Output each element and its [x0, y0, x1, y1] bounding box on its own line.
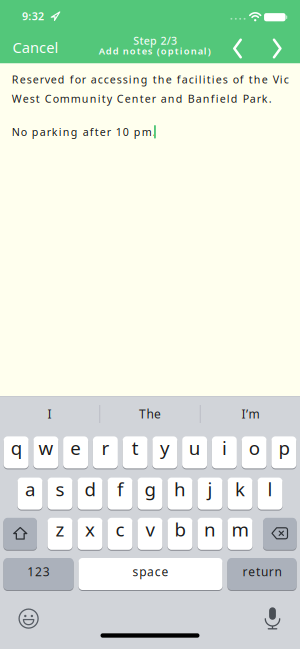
staticText: o	[249, 435, 260, 460]
button[interactable]: Dictation	[259, 602, 285, 635]
button[interactable]: o	[242, 436, 267, 468]
button[interactable]: Next step	[268, 34, 286, 63]
button[interactable]: The	[100, 396, 200, 436]
staticText: w	[38, 435, 53, 460]
button[interactable]: v	[137, 518, 162, 550]
button[interactable]: a	[17, 478, 42, 510]
button[interactable]: u	[182, 436, 207, 468]
button[interactable]: c	[107, 518, 132, 550]
staticText: p	[278, 435, 289, 460]
button[interactable]: g	[137, 478, 162, 510]
staticText: n	[204, 517, 216, 542]
staticText: 123	[27, 564, 50, 580]
button[interactable]: space	[78, 558, 222, 590]
staticText: return	[242, 564, 281, 580]
button[interactable]: r	[93, 436, 118, 468]
button[interactable]: m	[227, 518, 252, 550]
button[interactable]: Shift	[3, 518, 37, 550]
staticText: q	[11, 435, 22, 460]
button[interactable]: z	[47, 518, 72, 550]
button[interactable]: e	[63, 436, 88, 468]
button[interactable]: k	[227, 478, 252, 510]
staticText: u	[189, 435, 201, 460]
button[interactable]: Emoji	[13, 603, 44, 634]
staticText: m	[231, 517, 248, 542]
staticText: A d d n o t e s ( o p t i o n a l )	[99, 45, 211, 57]
button[interactable]: y	[152, 436, 177, 468]
staticText: s	[55, 477, 64, 501]
button[interactable]: l	[257, 478, 282, 510]
button[interactable]: p	[271, 436, 296, 468]
button[interactable]: i	[212, 436, 237, 468]
staticText: 9:32	[22, 9, 44, 23]
button[interactable]: b	[167, 518, 192, 550]
button[interactable]: w	[33, 436, 58, 468]
staticText: Cancel	[12, 38, 58, 57]
staticText: c	[115, 517, 124, 542]
button[interactable]: j	[197, 478, 222, 510]
button[interactable]: Delete	[263, 518, 296, 550]
staticText: b	[174, 517, 185, 542]
staticText: y	[160, 435, 170, 460]
staticText: t	[132, 435, 139, 460]
staticText: The	[139, 406, 161, 422]
button[interactable]: f	[107, 478, 132, 510]
button[interactable]: s	[47, 478, 72, 510]
button[interactable]: Previous step	[228, 34, 247, 63]
staticText: I	[47, 406, 51, 422]
button[interactable]: 123	[3, 558, 73, 590]
staticText: h	[174, 477, 186, 501]
staticText: f	[117, 477, 123, 501]
staticText: a	[25, 477, 35, 501]
staticText: i	[222, 435, 227, 460]
button[interactable]: x	[77, 518, 102, 550]
staticText: z	[55, 517, 64, 542]
staticText: No parking after 10 pm.	[12, 125, 156, 139]
button[interactable]: h	[167, 478, 192, 510]
staticText: v	[145, 517, 154, 542]
button[interactable]: return	[227, 558, 296, 590]
button[interactable]: t	[123, 436, 148, 468]
staticText: d	[84, 477, 95, 501]
button[interactable]: n	[197, 518, 222, 550]
button[interactable]: q	[4, 436, 29, 468]
button[interactable]: I’m	[201, 396, 300, 436]
staticText: West Community Center and Banfield Park.	[12, 91, 272, 106]
staticText: g	[144, 477, 155, 501]
button[interactable]: d	[77, 478, 102, 510]
button[interactable]: Cancel	[12, 34, 58, 61]
staticText: I’m	[241, 406, 259, 422]
staticText: Step 2/3	[133, 34, 177, 48]
staticText: space	[132, 564, 169, 580]
staticText: r	[101, 435, 109, 460]
staticText: l	[267, 477, 272, 501]
staticText: e	[70, 435, 81, 460]
staticText: Reserved for accessing the facilities of…	[12, 72, 289, 86]
button[interactable]: I	[0, 396, 99, 436]
staticText: j	[207, 477, 212, 501]
staticText: k	[235, 477, 245, 501]
staticText: x	[85, 517, 95, 542]
